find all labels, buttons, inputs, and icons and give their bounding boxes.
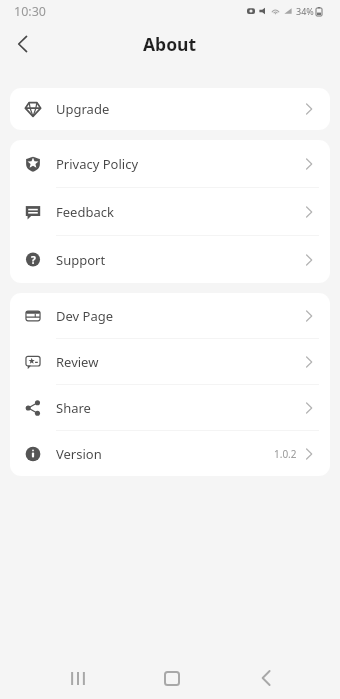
staticText: Support bbox=[56, 251, 106, 269]
button[interactable]: Dev Page bbox=[10, 293, 330, 338]
button[interactable]: Feedback bbox=[10, 188, 330, 235]
staticText: Share bbox=[56, 399, 91, 417]
button[interactable]: Back bbox=[246, 658, 286, 698]
button[interactable]: Back bbox=[4, 26, 40, 62]
staticText: Feedback bbox=[56, 203, 114, 221]
staticText: ? bbox=[31, 253, 36, 267]
button[interactable]: Share bbox=[10, 385, 330, 430]
staticText: 34% bbox=[296, 5, 314, 17]
button[interactable]: Privacy Policy bbox=[10, 140, 330, 187]
staticText: Upgrade bbox=[56, 100, 110, 118]
staticText: Review bbox=[56, 353, 99, 371]
button[interactable]: Upgrade bbox=[10, 88, 330, 130]
button[interactable]: Review bbox=[10, 339, 330, 384]
button[interactable]: Home bbox=[152, 658, 192, 698]
staticText: Privacy Policy bbox=[56, 155, 139, 173]
button[interactable]: Recents bbox=[58, 658, 98, 698]
staticText: 10:30 bbox=[14, 3, 46, 20]
staticText: Dev Page bbox=[56, 307, 114, 325]
staticText: Version bbox=[56, 445, 102, 463]
staticText: 1.0.2 bbox=[274, 447, 297, 461]
button[interactable]: ? bbox=[10, 236, 330, 283]
staticText: About bbox=[143, 32, 197, 56]
button[interactable]: Version bbox=[10, 431, 330, 476]
